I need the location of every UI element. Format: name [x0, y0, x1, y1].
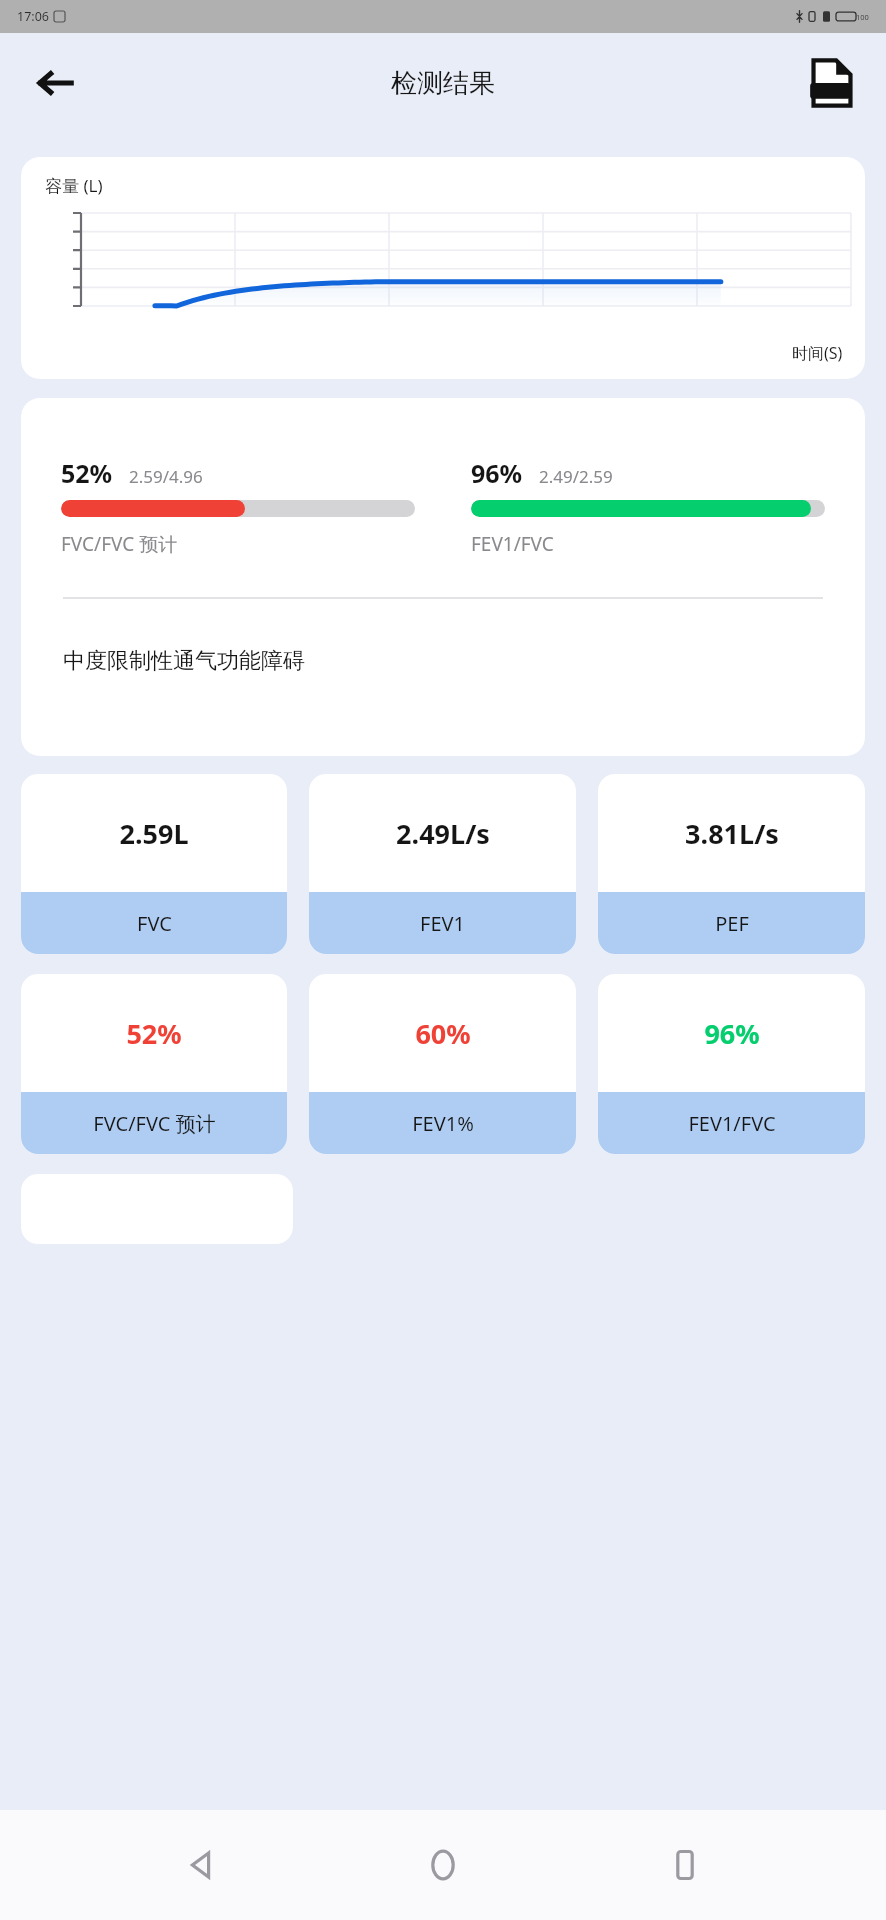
staticText: 100 — [856, 12, 869, 22]
button[interactable]: 2.59L — [21, 774, 287, 954]
button[interactable]: 2.49L/s — [309, 774, 576, 954]
button[interactable]: Export PDF — [802, 53, 862, 113]
staticText: FEV1/FVC — [688, 1110, 776, 1137]
staticText: FEV1 — [420, 910, 465, 937]
button[interactable]: Recent apps — [645, 1825, 725, 1905]
staticText: FVC/FVC 预计 — [61, 531, 178, 557]
staticText: FEV1% — [412, 1110, 474, 1137]
staticText: 时间(S) — [792, 342, 843, 364]
staticText: PEF — [715, 910, 749, 937]
staticText: 检测结果 — [391, 67, 495, 100]
button[interactable]: Back — [26, 54, 84, 112]
staticText: 2.49L/s — [396, 815, 490, 852]
button[interactable]: 60% — [309, 974, 576, 1154]
staticText: 52% — [61, 456, 113, 490]
staticText: 2.59L — [119, 815, 189, 852]
staticText: 容量 (L) — [45, 174, 103, 197]
staticText: 96% — [704, 1015, 760, 1052]
staticText: FVC/FVC 预计 — [93, 1110, 216, 1137]
button[interactable]: 3.81L/s — [598, 774, 865, 954]
staticText: 96% — [471, 456, 523, 490]
staticText: 中度限制性通气功能障碍 — [63, 647, 305, 675]
staticText: FEV1/FVC — [471, 531, 554, 557]
button[interactable]: Back — [162, 1825, 242, 1905]
staticText: FVC — [137, 910, 172, 937]
staticText: 52% — [126, 1015, 182, 1052]
button[interactable]: 52% — [21, 398, 865, 756]
button[interactable]: 容量 (L) — [21, 157, 865, 379]
staticText: 3.81L/s — [685, 815, 779, 852]
staticText: 2.59/4.96 — [129, 465, 203, 488]
staticText: 17:06 — [17, 8, 49, 25]
button[interactable]: 96% — [598, 974, 865, 1154]
staticText: 2.49/2.59 — [539, 465, 613, 488]
button[interactable]: 52% — [21, 974, 287, 1154]
staticText: 60% — [415, 1015, 471, 1052]
button[interactable]: Home — [403, 1825, 483, 1905]
